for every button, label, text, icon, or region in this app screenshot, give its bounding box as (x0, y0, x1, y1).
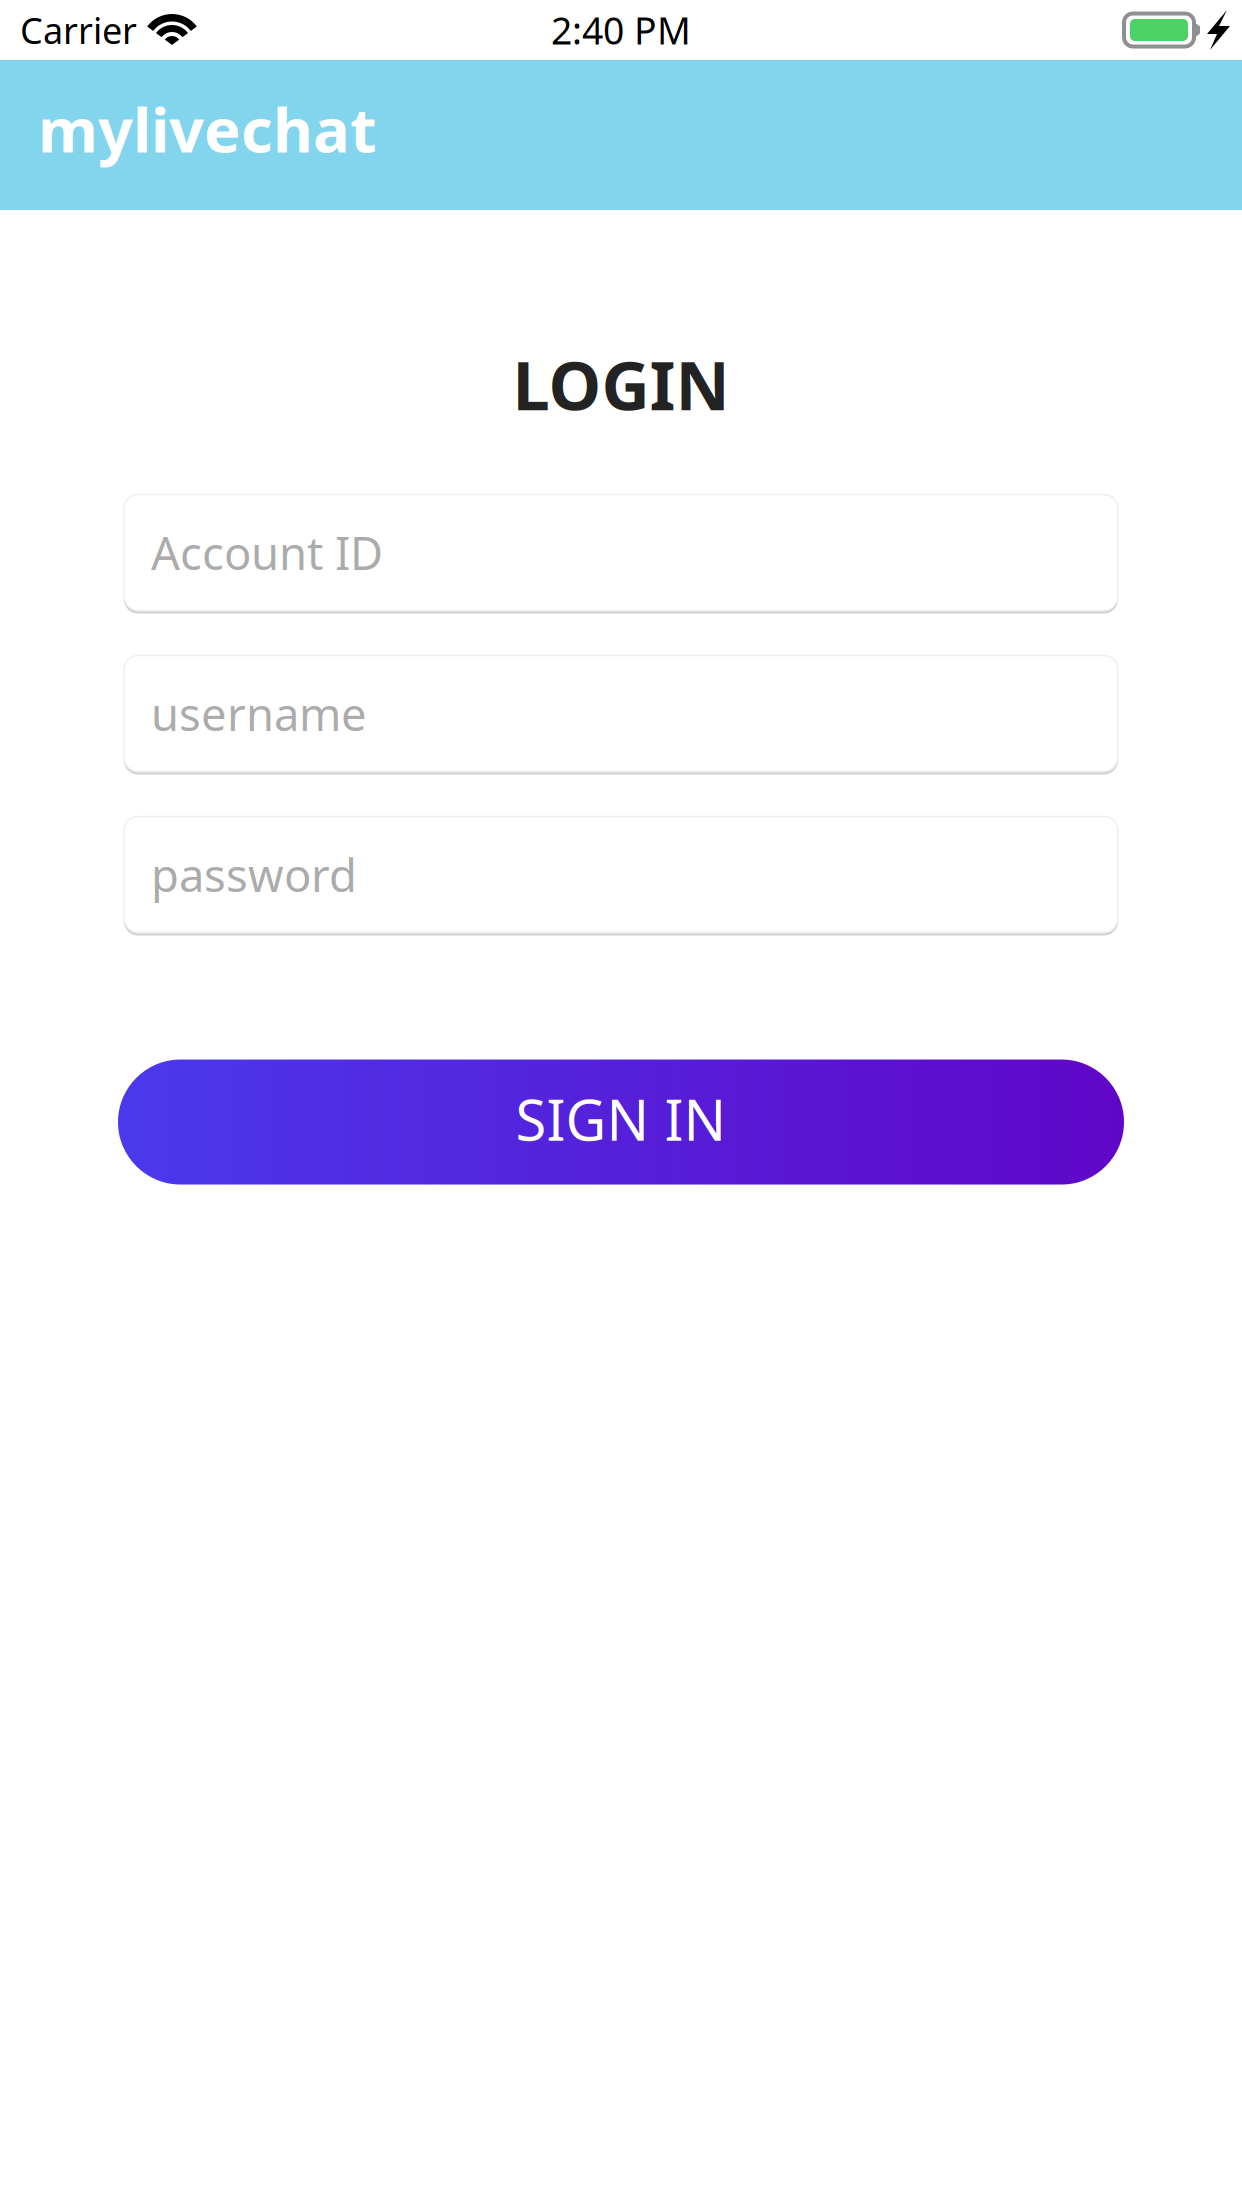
staticText: password (151, 844, 357, 905)
staticText: mylivechat (38, 88, 377, 169)
staticText: username (151, 683, 367, 744)
button[interactable]: username (124, 655, 1118, 771)
button[interactable]: SIGN IN (118, 1059, 1124, 1184)
staticText: Carrier (20, 6, 137, 54)
button[interactable]: password (124, 816, 1118, 932)
staticText: LOGIN (512, 340, 729, 428)
staticText: SIGN IN (515, 1082, 726, 1156)
staticText: 2:40 PM (551, 5, 691, 55)
button[interactable]: Account ID (124, 494, 1118, 610)
staticText: Account ID (151, 522, 383, 583)
